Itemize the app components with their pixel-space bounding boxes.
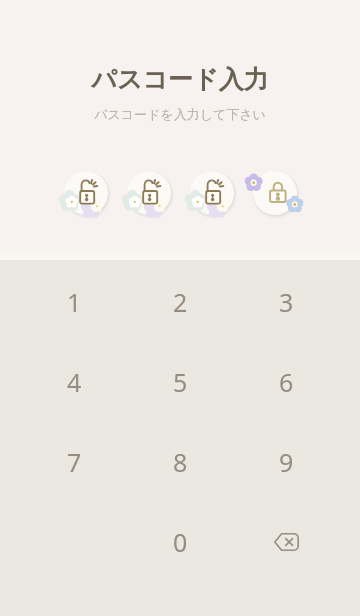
- staticText: 5: [173, 365, 188, 399]
- button[interactable]: 7: [21, 422, 127, 502]
- staticText: 1: [67, 285, 82, 319]
- button[interactable]: 4: [21, 342, 127, 422]
- button[interactable]: 5: [127, 342, 233, 422]
- staticText: 8: [173, 445, 188, 479]
- other: Backspace: [273, 533, 299, 551]
- staticText: 3: [279, 285, 294, 319]
- button[interactable]: 0: [127, 502, 233, 582]
- staticText: 6: [279, 365, 294, 399]
- button[interactable]: 1: [21, 262, 127, 342]
- button[interactable]: Backspace: [233, 502, 339, 582]
- button[interactable]: 8: [127, 422, 233, 502]
- staticText: 9: [279, 445, 294, 479]
- staticText: 7: [67, 445, 82, 479]
- button[interactable]: 9: [233, 422, 339, 502]
- button[interactable]: 2: [127, 262, 233, 342]
- button[interactable]: 6: [233, 342, 339, 422]
- staticText: パスコードを入力して下さい: [94, 106, 266, 122]
- staticText: 4: [67, 365, 82, 399]
- button[interactable]: 3: [233, 262, 339, 342]
- staticText: 0: [173, 525, 188, 559]
- staticText: 2: [173, 285, 188, 319]
- staticText: パスコード入力: [91, 64, 269, 95]
- other: Passcode entry, 1 of 4 digits entered: [54, 161, 307, 225]
